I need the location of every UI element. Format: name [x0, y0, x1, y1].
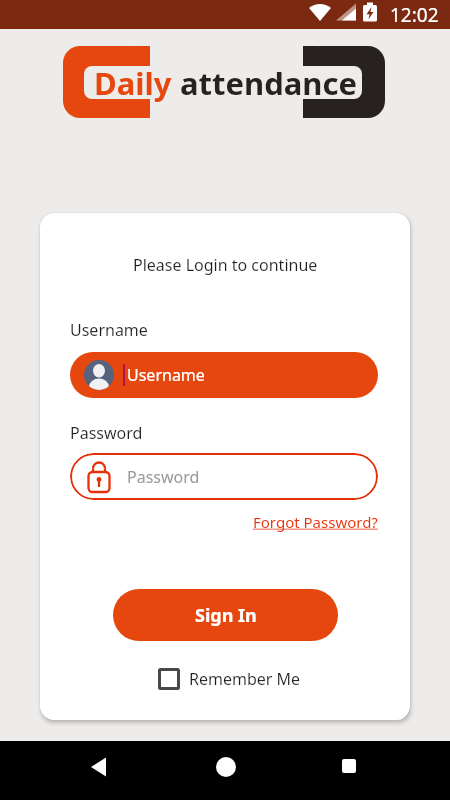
button[interactable]: [76, 752, 121, 790]
staticText: attendance: [180, 62, 357, 104]
staticText: Username: [127, 364, 205, 386]
staticText: Password: [127, 466, 200, 488]
button[interactable]: Username: [70, 352, 378, 398]
button[interactable]: Password: [70, 453, 378, 500]
staticText: Password: [70, 422, 143, 444]
staticText: Username: [70, 319, 148, 341]
staticText: Sign In: [195, 603, 257, 628]
button[interactable]: Sign In: [113, 589, 338, 641]
button[interactable]: [327, 752, 372, 790]
staticText: Please Login to continue: [133, 254, 318, 276]
button[interactable]: Remember Me: [158, 668, 301, 690]
staticText: Daily: [94, 62, 180, 104]
staticText: Remember Me: [189, 668, 301, 690]
button[interactable]: [203, 752, 248, 790]
button[interactable]: Forgot Password?: [253, 512, 378, 532]
staticText: 12:02: [390, 2, 439, 28]
